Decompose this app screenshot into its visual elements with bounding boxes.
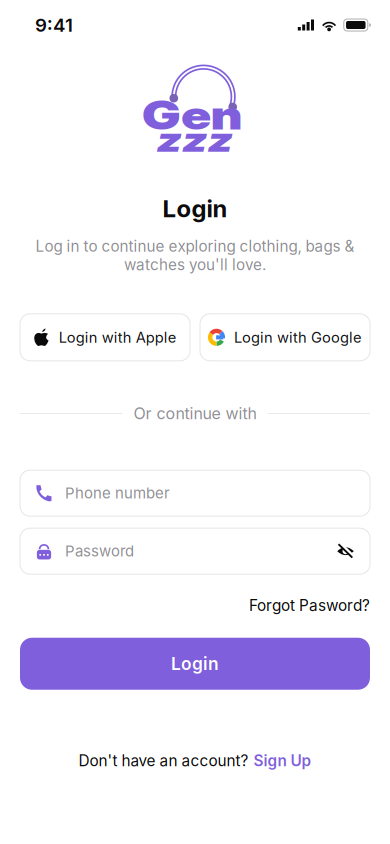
- staticText: Phone number: [65, 484, 170, 502]
- button[interactable]: Forgot Pasword?: [249, 596, 370, 615]
- staticText: Login with Apple: [59, 328, 177, 346]
- button[interactable]: Show password: [336, 542, 355, 561]
- staticText: Or continue with: [133, 404, 256, 423]
- button[interactable]: Login with Apple: [20, 314, 190, 361]
- staticText: Don't have an account?: [78, 751, 248, 770]
- staticText: Log in to continue exploring clothing, b…: [35, 237, 354, 255]
- button[interactable]: Login: [20, 638, 370, 690]
- staticText: Forgot Pasword?: [249, 596, 370, 615]
- staticText: zzz: [166, 119, 223, 160]
- button[interactable]: Login with Google: [200, 314, 370, 361]
- staticText: 9:41: [35, 14, 73, 36]
- staticText: Gen: [153, 91, 231, 139]
- staticText: watches you'll love.: [124, 255, 266, 274]
- staticText: Login: [162, 194, 227, 223]
- staticText: Login: [171, 653, 219, 674]
- button[interactable]: Sign Up: [253, 751, 311, 770]
- staticText: Login with Google: [234, 328, 362, 346]
- staticText: Password: [65, 542, 134, 560]
- staticText: Sign Up: [253, 751, 311, 770]
